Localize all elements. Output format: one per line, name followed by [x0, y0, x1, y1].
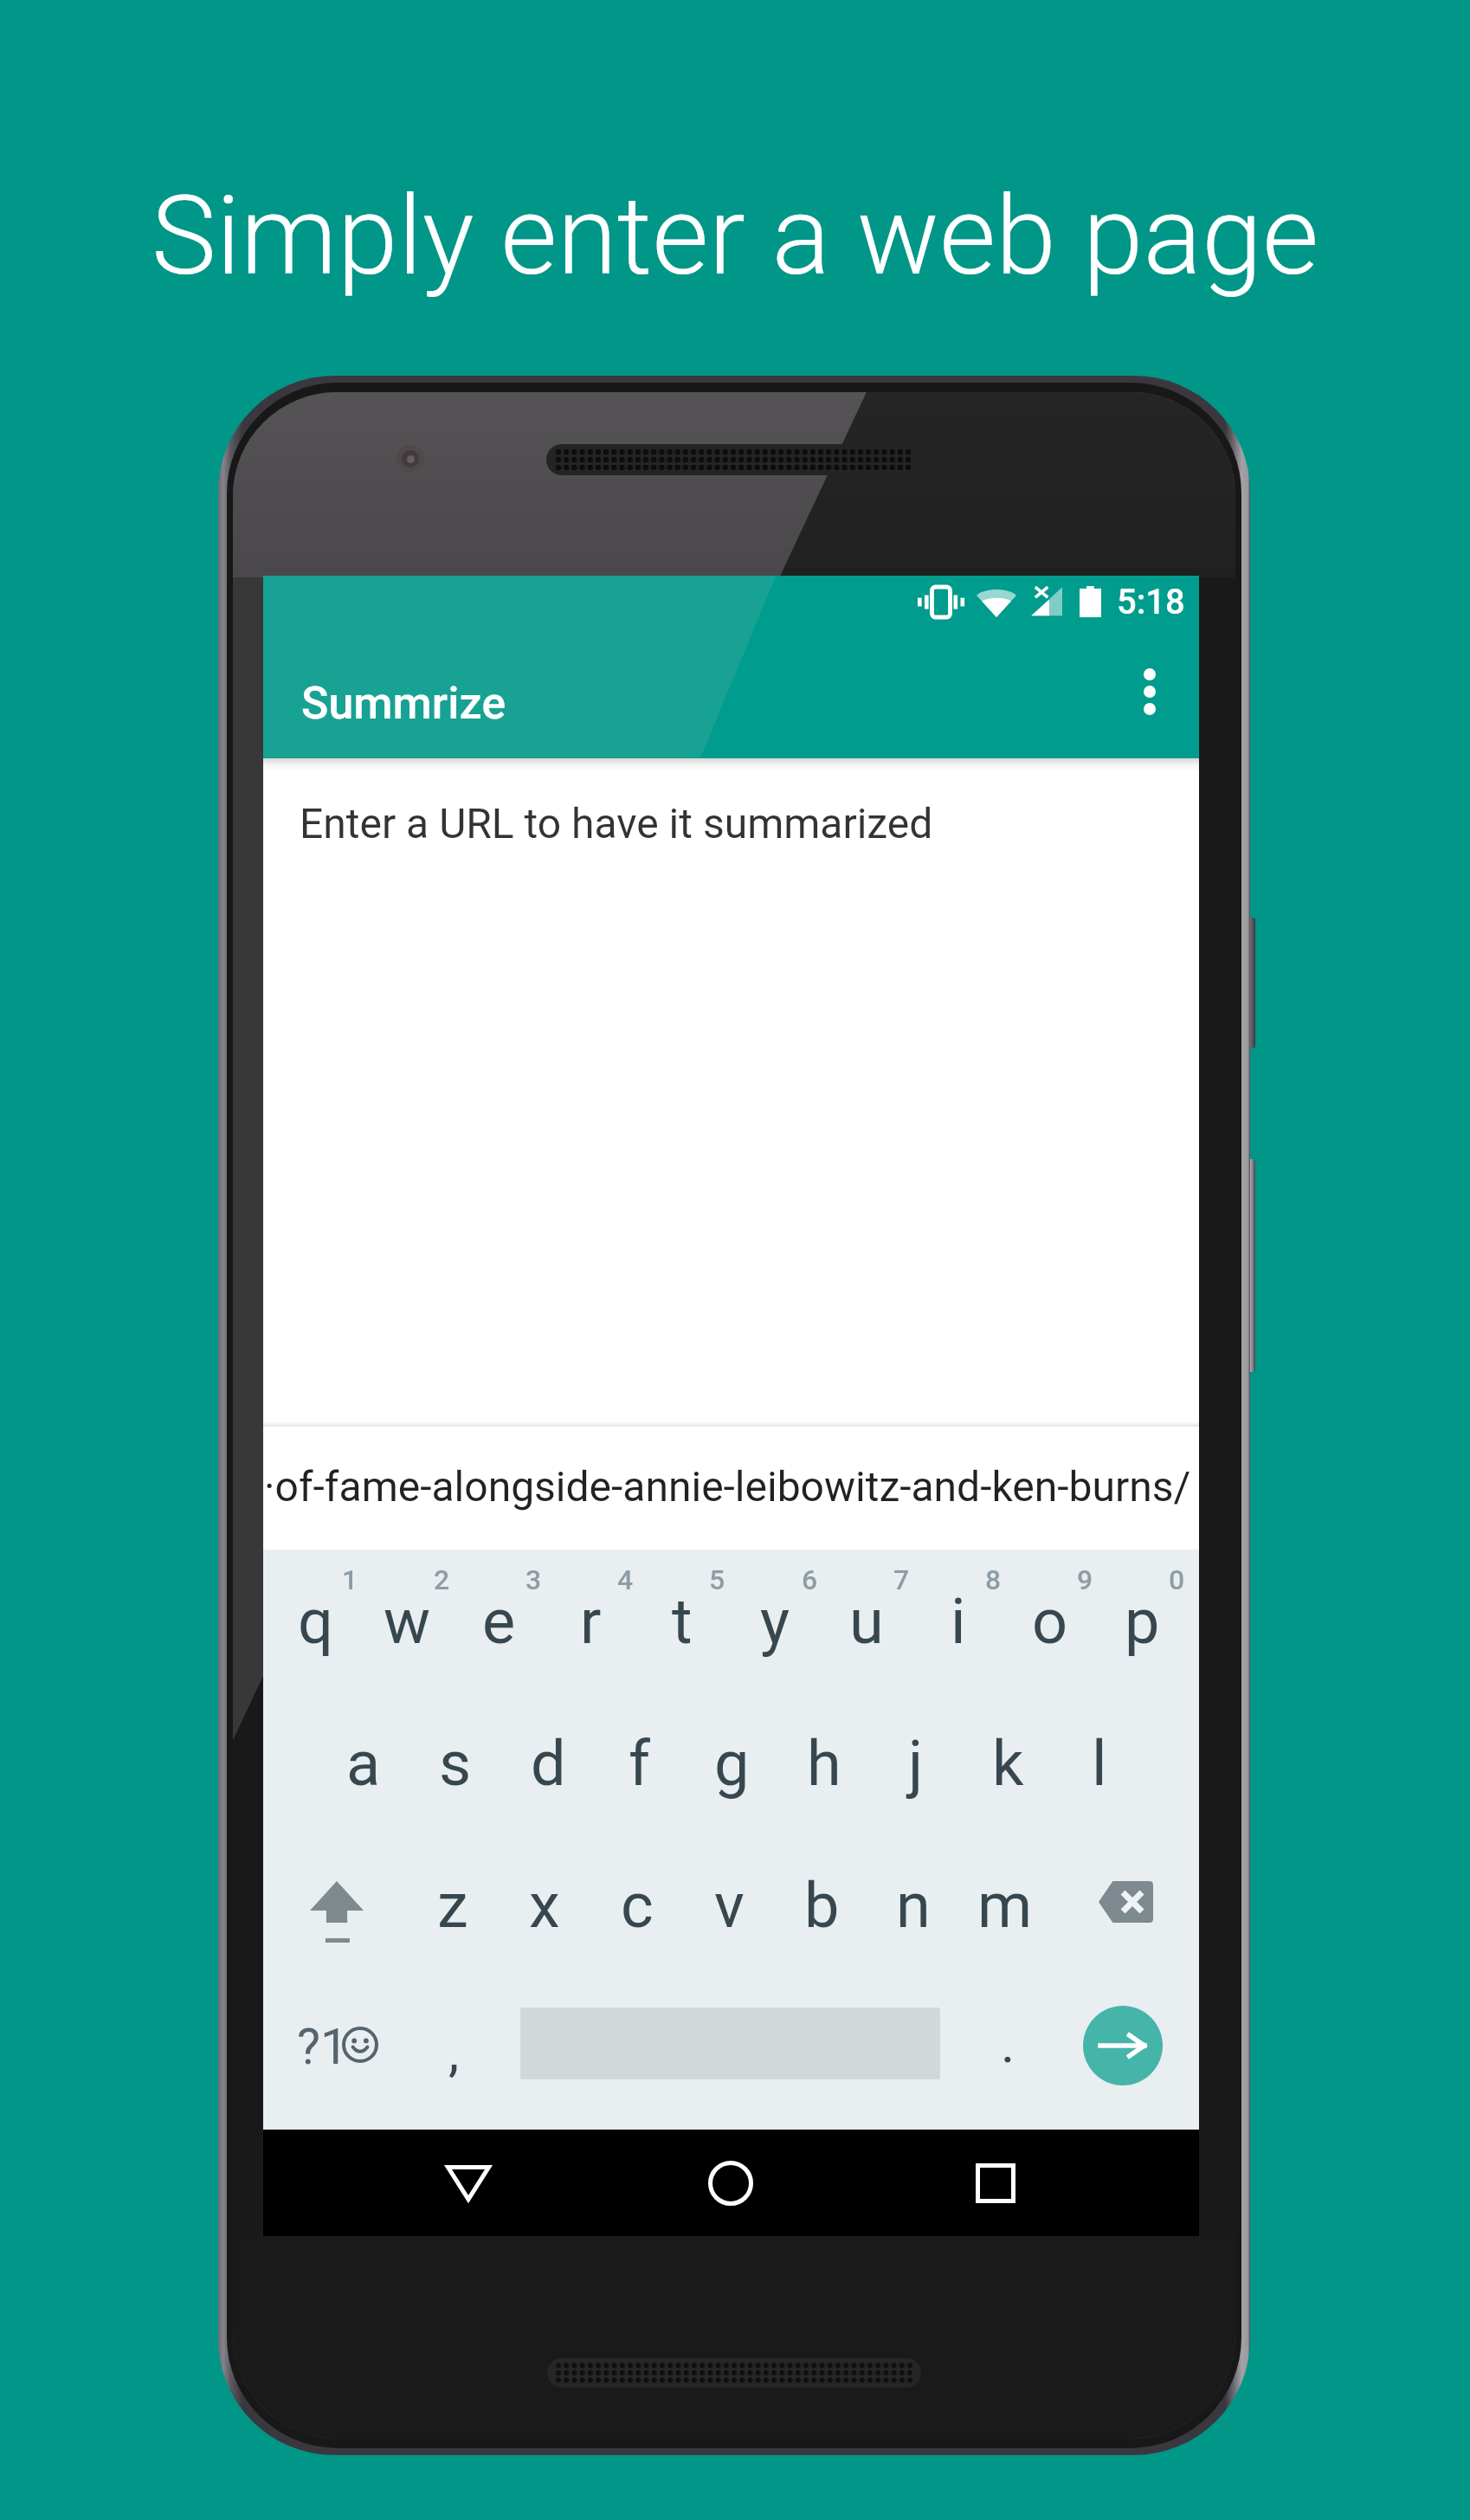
staticText: d [531, 1727, 566, 1800]
staticText: Summrize [301, 677, 506, 730]
button[interactable]: h [778, 1692, 870, 1834]
staticText: . [1001, 2012, 1015, 2075]
staticText: z [437, 1869, 468, 1942]
staticText: 9 [1077, 1563, 1093, 1596]
button[interactable]: b [776, 1834, 867, 1975]
staticText: ·of-fame-alongside-annie-leibowitz-and-k… [264, 1462, 1191, 1511]
button[interactable]: 2 [361, 1550, 453, 1692]
button[interactable]: Backspace [1061, 1834, 1199, 1975]
staticText: c [621, 1869, 654, 1942]
staticText: 4 [617, 1563, 634, 1596]
button[interactable]: d [502, 1692, 594, 1834]
staticText: i [951, 1585, 966, 1658]
staticText: o [1032, 1585, 1068, 1658]
staticText: u [849, 1585, 884, 1658]
button[interactable]: Recent apps [947, 2135, 1044, 2232]
staticText: r [580, 1585, 602, 1658]
staticText: p [1125, 1585, 1160, 1658]
staticText: l [1092, 1727, 1107, 1800]
button[interactable]: 3 [453, 1550, 545, 1692]
staticText: f [629, 1727, 651, 1800]
staticText: 0 [1169, 1563, 1185, 1596]
staticText: y [760, 1585, 790, 1658]
button[interactable]: 7 [821, 1550, 912, 1692]
staticText: , [448, 2021, 460, 2084]
staticText: Simply enter a web page [0, 172, 1470, 300]
staticText: g [714, 1727, 750, 1800]
staticText: 1 [342, 1563, 358, 1596]
button[interactable]: c [591, 1834, 683, 1975]
staticText: s [439, 1727, 472, 1800]
button[interactable]: Back [420, 2135, 517, 2232]
button[interactable]: n [867, 1834, 959, 1975]
staticText: q [298, 1585, 333, 1658]
button[interactable]: l [1054, 1692, 1145, 1834]
staticText: m [977, 1869, 1033, 1942]
button[interactable]: 9 [1004, 1550, 1096, 1692]
button[interactable]: m [959, 1834, 1051, 1975]
staticText: b [804, 1869, 840, 1942]
staticText: v [714, 1869, 745, 1942]
staticText: w [384, 1585, 431, 1658]
button[interactable]: x [499, 1834, 590, 1975]
staticText: n [896, 1869, 931, 1942]
button[interactable]: z [407, 1834, 499, 1975]
button[interactable]: k [962, 1692, 1054, 1834]
button[interactable]: j [870, 1692, 962, 1834]
button[interactable]: . [961, 1975, 1054, 2130]
staticText: 5 [709, 1563, 725, 1596]
staticText: 5:18 [1117, 582, 1185, 622]
button[interactable]: Shift [263, 1834, 402, 1975]
button[interactable]: v [683, 1834, 775, 1975]
staticText: j [908, 1727, 924, 1800]
staticText: ?1 [297, 2018, 348, 2076]
button[interactable]: 5 [636, 1550, 728, 1692]
button[interactable]: g [686, 1692, 777, 1834]
staticText: a [346, 1727, 381, 1800]
button[interactable]: 1 [269, 1550, 361, 1692]
button[interactable]: 8 [912, 1550, 1004, 1692]
staticText: 2 [434, 1563, 450, 1596]
button[interactable]: a [318, 1692, 409, 1834]
staticText: 8 [985, 1563, 1002, 1596]
button[interactable]: f [594, 1692, 686, 1834]
button[interactable]: Go [1061, 1983, 1185, 2108]
button[interactable]: , [407, 1975, 500, 2130]
button[interactable]: Symbols [263, 1975, 406, 2130]
staticText: 6 [802, 1563, 818, 1596]
button[interactable]: 4 [545, 1550, 636, 1692]
button[interactable]: s [409, 1692, 501, 1834]
staticText: t [672, 1585, 693, 1658]
button[interactable]: 6 [729, 1550, 821, 1692]
staticText: Enter a URL to have it summarized [300, 799, 933, 848]
staticText: h [807, 1727, 841, 1800]
staticText: x [529, 1869, 560, 1942]
button[interactable]: More options [1111, 644, 1189, 739]
staticText: k [992, 1727, 1024, 1800]
staticText: e [482, 1585, 516, 1658]
staticText: 3 [525, 1563, 542, 1596]
button[interactable]: 0 [1096, 1550, 1188, 1692]
button[interactable]: Home [682, 2135, 779, 2232]
staticText: 7 [893, 1563, 910, 1596]
button[interactable]: Space [520, 1975, 940, 2130]
